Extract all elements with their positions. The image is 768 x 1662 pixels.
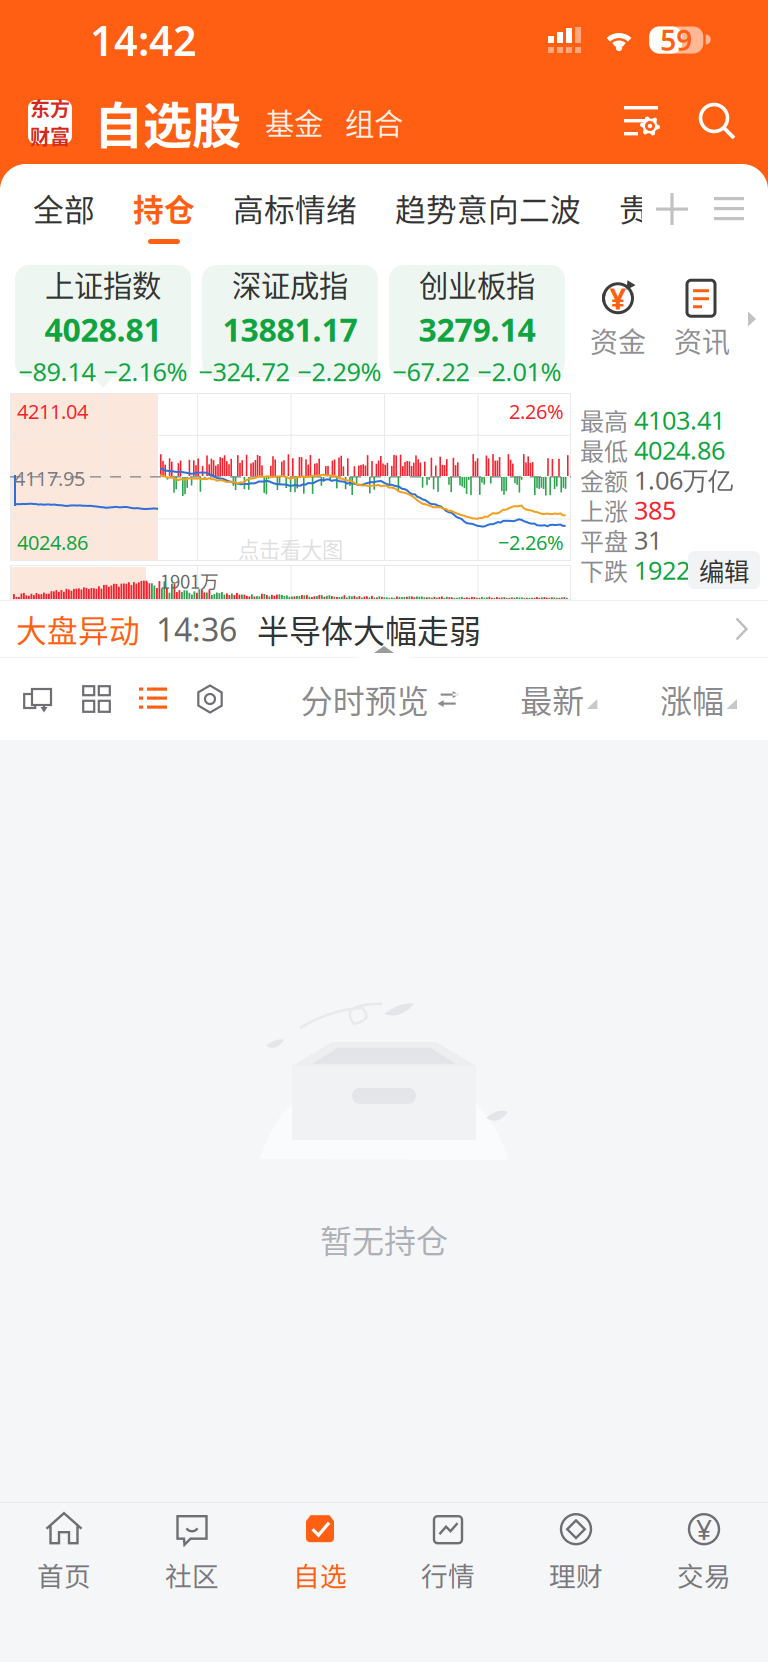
button[interactable]: 自选股 [72, 80, 241, 164]
staticText: 59 [660, 21, 692, 59]
staticText: 创业板指 [419, 263, 535, 305]
staticText: 首页 [37, 1555, 91, 1594]
staticText: −324.72 [198, 355, 289, 388]
staticText: 金额 [580, 463, 628, 497]
staticText: 深证成指 [232, 263, 348, 305]
staticText: 3279.14 [418, 308, 535, 351]
staticText: 平盘 [580, 523, 628, 557]
staticText: 1901万 [160, 567, 219, 594]
staticText: 最高 [580, 403, 628, 437]
button[interactable]: More indices [744, 254, 760, 384]
staticText: 自选股 [94, 86, 241, 158]
staticText: 下跌 [580, 553, 628, 587]
staticText: 4028.81 [44, 308, 161, 351]
button[interactable]: ¥ [640, 1503, 768, 1591]
button[interactable]: List view [125, 658, 181, 740]
staticText: 分时预览 [301, 676, 429, 722]
button[interactable]: Grid view [68, 658, 125, 740]
button[interactable]: Layout mode [8, 658, 68, 740]
staticText: 4211.04 [17, 398, 88, 425]
button[interactable]: 组合 [323, 85, 403, 159]
button[interactable]: 理财 [512, 1503, 640, 1591]
staticText: 暂无持仓 [320, 1216, 448, 1262]
staticText: 资讯 [674, 320, 730, 361]
staticText: 1.06万亿 [634, 463, 733, 497]
button[interactable]: 科创50 [576, 265, 752, 377]
staticText: 组合 [345, 101, 403, 143]
button[interactable]: 全部 [14, 164, 114, 254]
staticText: 高标情绪 [233, 186, 357, 230]
staticText: 自选 [293, 1555, 347, 1594]
staticText: 全部 [33, 186, 95, 230]
button[interactable]: 行情 [384, 1503, 512, 1591]
staticText: 东方 [30, 93, 70, 122]
button[interactable]: 涨幅 [660, 658, 768, 740]
button[interactable]: Add group [642, 164, 702, 254]
button[interactable]: 资讯 [660, 254, 744, 384]
button[interactable]: Search [672, 96, 742, 148]
staticText: −67.22 [392, 355, 469, 388]
button[interactable]: 基金 [241, 85, 323, 159]
button[interactable]: 上证指数 [15, 265, 191, 377]
staticText: 13881.17 [222, 308, 357, 351]
button[interactable]: ¥ [576, 254, 660, 384]
staticText: 最新 [520, 676, 584, 722]
staticText: 2.26% [509, 398, 564, 425]
staticText: 385 [634, 493, 676, 527]
staticText: 14:42 [90, 13, 197, 67]
button[interactable]: Manage groups [702, 164, 756, 254]
button[interactable]: Sort settings [616, 94, 672, 150]
staticText: 资金 [590, 320, 646, 361]
button[interactable]: 编辑 [688, 551, 760, 589]
button[interactable]: 自选 [256, 1503, 384, 1591]
button[interactable]: 创业板指 [389, 265, 565, 377]
staticText: 贵金属 [619, 186, 712, 230]
staticText: 持仓 [133, 186, 195, 230]
staticText: 1188.22 [605, 308, 722, 351]
staticText: 半导体大幅走弱 [257, 606, 481, 652]
staticText: 行情 [421, 1555, 475, 1594]
staticText: 点击看大图 [238, 533, 343, 564]
staticText: 社区 [165, 1555, 219, 1594]
button[interactable]: 分时预览 [301, 658, 459, 740]
button[interactable]: 贵金属 [600, 164, 731, 254]
staticText: 趋势意向二波 [395, 186, 581, 230]
staticText: 1922 [634, 553, 690, 587]
staticText: −89.14 [18, 355, 95, 388]
staticText: 财富 [30, 121, 70, 150]
staticText: 理财 [549, 1555, 603, 1594]
staticText: 4117.95 [14, 465, 85, 492]
staticText: 最低 [580, 433, 628, 467]
staticText: 4024.86 [634, 433, 725, 467]
staticText: ¥ [696, 1511, 712, 1548]
button[interactable]: Display settings [181, 658, 239, 740]
staticText: ¥ [609, 279, 626, 318]
button[interactable]: 最新 [520, 658, 598, 740]
button[interactable]: Collapse [348, 641, 420, 658]
button[interactable]: 首页 [0, 1503, 128, 1591]
staticText: −2.29% [297, 355, 381, 388]
staticText: 涨幅 [660, 676, 724, 722]
button[interactable]: 高标情绪 [214, 164, 376, 254]
staticText: 上证指数 [45, 263, 161, 305]
button[interactable]: 社区 [128, 1503, 256, 1591]
staticText: 编辑 [699, 552, 749, 588]
staticText: −2.26% [498, 529, 564, 556]
staticText: 4103.41 [634, 403, 725, 437]
staticText: 大盘异动 [16, 607, 140, 651]
staticText: −2.16% [103, 355, 187, 388]
button[interactable]: East Money logo [28, 100, 72, 144]
staticText: 上涨 [580, 493, 628, 527]
staticText: 基金 [265, 101, 323, 143]
button[interactable]: 持仓 [114, 164, 214, 254]
staticText: 14:36 [156, 608, 237, 650]
button[interactable]: 深证成指 [202, 265, 378, 377]
button[interactable]: 趋势意向二波 [376, 164, 600, 254]
staticText: −2.01% [477, 355, 561, 388]
staticText: 交易 [677, 1555, 731, 1594]
staticText: 4024.86 [17, 529, 88, 556]
staticText: 科创50 [619, 263, 709, 305]
button[interactable]: 大盘异动 [0, 601, 768, 657]
